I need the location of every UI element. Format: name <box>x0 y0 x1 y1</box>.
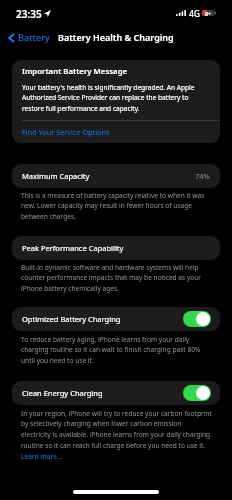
staticText: In your region, iPhone will try to reduc… <box>21 409 212 450</box>
staticText: 23:35 <box>16 7 42 21</box>
staticText: Find Your Service Options <box>22 127 110 137</box>
button[interactable]: Toggle switch, on <box>183 385 211 401</box>
staticText: Built-in dynamic software and hardware s… <box>21 263 212 293</box>
button[interactable]: Peak Performance Capability <box>12 236 220 260</box>
staticText: Optimized Battery Charging <box>22 314 183 324</box>
staticText: Maximum Capacity <box>22 171 195 181</box>
staticText: Your battery's health is significantly d… <box>22 83 207 113</box>
staticText: 74% <box>195 171 210 181</box>
staticText: Peak Performance Capability <box>22 243 220 253</box>
button[interactable]: Battery <box>8 31 50 44</box>
button[interactable]: Learn more... <box>21 452 63 461</box>
staticText: 8+ <box>205 10 212 16</box>
button[interactable]: Find Your Service Options <box>12 120 220 143</box>
staticText: Battery <box>18 31 50 44</box>
staticText: Clean Energy Charging <box>22 388 183 398</box>
staticText: To reduce battery aging, iPhone learns f… <box>21 335 212 365</box>
staticText: 4G <box>189 8 201 20</box>
button[interactable]: Toggle switch, on <box>183 311 211 327</box>
staticText: Important Battery Message <box>22 66 128 77</box>
staticText: This is a measure of battery capacity re… <box>21 191 212 221</box>
staticText: Battery Health & Charging <box>58 31 174 43</box>
button[interactable]: Maximum Capacity <box>12 164 220 188</box>
